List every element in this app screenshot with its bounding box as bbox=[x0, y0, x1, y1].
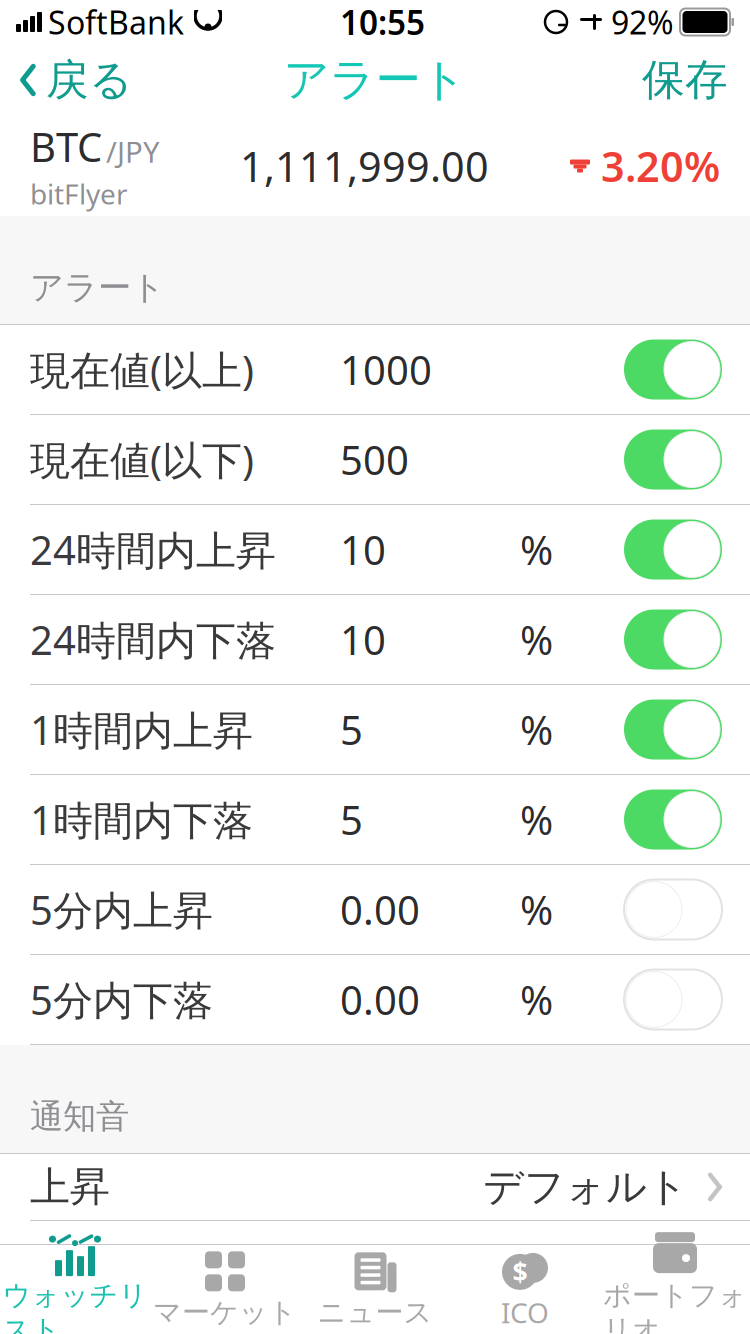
staticText: 保存 bbox=[642, 54, 728, 106]
button[interactable]: $ bbox=[450, 1244, 600, 1334]
button[interactable]: 上昇 bbox=[0, 1154, 750, 1221]
button[interactable]: ウォッチリスト bbox=[0, 1244, 150, 1334]
staticText: 24時間内下落 bbox=[30, 613, 276, 666]
staticText: 通知音 bbox=[30, 1096, 129, 1137]
staticText: ニュース bbox=[317, 1295, 432, 1330]
staticText: マーケット bbox=[153, 1295, 297, 1330]
staticText: % bbox=[520, 523, 553, 576]
staticText: ICO bbox=[501, 1294, 549, 1331]
staticText: 10 bbox=[340, 613, 386, 666]
button[interactable]: 保存 bbox=[620, 48, 750, 112]
button[interactable]: ポートフォリオ bbox=[600, 1244, 750, 1334]
staticText: 5分内下落 bbox=[30, 973, 213, 1026]
staticText: ウォッチリスト bbox=[2, 1278, 147, 1334]
button[interactable]: マーケット bbox=[150, 1244, 300, 1334]
staticText: 1時間内下落 bbox=[30, 793, 253, 846]
staticText: 92% bbox=[611, 1, 674, 43]
staticText: デフォルト bbox=[483, 1162, 688, 1211]
staticText: /JPY bbox=[106, 132, 160, 171]
button[interactable]: 現在値(以下) bbox=[0, 415, 750, 505]
button[interactable]: ニュース bbox=[300, 1244, 450, 1334]
staticText: 500 bbox=[340, 433, 409, 486]
staticText: 5 bbox=[340, 793, 363, 846]
button[interactable]: 1時間内上昇 bbox=[0, 685, 750, 775]
staticText: 10 bbox=[340, 523, 386, 576]
staticText: % bbox=[520, 883, 553, 936]
staticText: bitFlyer bbox=[30, 175, 128, 212]
staticText: BTC bbox=[30, 120, 102, 173]
button[interactable]: 24時間内上昇 bbox=[0, 505, 750, 595]
staticText: $ bbox=[512, 1254, 527, 1290]
staticText: ポートフォリオ bbox=[603, 1278, 747, 1334]
staticText: 5 bbox=[340, 703, 363, 756]
staticText: SoftBank bbox=[48, 1, 184, 43]
staticText: 0.00 bbox=[340, 973, 420, 1026]
staticText: 1000 bbox=[340, 343, 432, 396]
staticText: 24時間内上昇 bbox=[30, 523, 276, 576]
staticText: % bbox=[520, 703, 553, 756]
staticText: % bbox=[520, 793, 553, 846]
button[interactable]: 1時間内下落 bbox=[0, 775, 750, 865]
staticText: アラート bbox=[30, 267, 165, 308]
button[interactable]: 5分内下落 bbox=[0, 955, 750, 1045]
button[interactable]: 現在値(以上) bbox=[0, 325, 750, 415]
staticText: 上昇 bbox=[30, 1162, 110, 1211]
staticText: 戻る bbox=[46, 54, 133, 106]
staticText: アラート bbox=[283, 52, 466, 108]
staticText: 3.20% bbox=[601, 139, 720, 193]
staticText: 現在値(以下) bbox=[30, 433, 254, 486]
staticText: 5分内上昇 bbox=[30, 883, 213, 936]
button[interactable]: 5分内上昇 bbox=[0, 865, 750, 955]
staticText: 0.00 bbox=[340, 883, 420, 936]
button[interactable]: 24時間内下落 bbox=[0, 595, 750, 685]
staticText: 1時間内上昇 bbox=[30, 703, 253, 756]
staticText: 1,111,999.00 bbox=[240, 139, 489, 193]
button[interactable]: 戻る bbox=[0, 48, 151, 112]
staticText: 10:55 bbox=[340, 0, 425, 44]
staticText: % bbox=[520, 973, 553, 1026]
staticText: 現在値(以上) bbox=[30, 343, 254, 396]
staticText: % bbox=[520, 613, 553, 666]
